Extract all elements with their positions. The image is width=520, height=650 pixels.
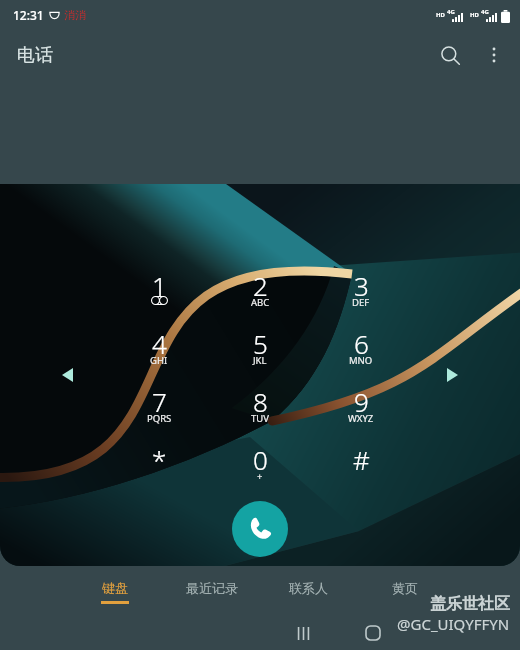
staticText: * (152, 442, 167, 477)
staticText: 联系人 (289, 580, 328, 596)
staticText: 9 (354, 384, 369, 419)
button[interactable]: 9 (321, 377, 401, 427)
staticText: + (257, 470, 263, 483)
staticText: 2 (253, 268, 268, 303)
button[interactable]: 1 (119, 261, 199, 311)
staticText: @GC_UIQYFFYN (397, 614, 510, 634)
staticText: HD (470, 11, 479, 19)
staticText: HD (436, 11, 445, 19)
staticText: 盖乐世社区 (430, 594, 510, 614)
staticText: WXYZ (348, 412, 374, 425)
staticText: 3 (354, 268, 369, 303)
button[interactable]: 4 (119, 319, 199, 369)
button[interactable]: 联系人 (263, 572, 353, 618)
staticText: 最近记录 (186, 580, 238, 596)
button[interactable]: 7 (119, 377, 199, 427)
staticText: 键盘 (102, 580, 128, 596)
staticText: 电话 (17, 44, 53, 67)
button[interactable]: 键盘 (70, 572, 160, 618)
button[interactable]: 最近记录 (167, 572, 257, 618)
staticText: 8 (253, 384, 268, 419)
button[interactable]: Next page (437, 360, 467, 390)
staticText: 6 (354, 326, 369, 361)
staticText: ABC (251, 296, 270, 309)
staticText: PQRS (147, 412, 172, 425)
button[interactable]: 8 (220, 377, 300, 427)
staticText: GHI (150, 354, 168, 367)
staticText: # (353, 442, 370, 477)
button[interactable]: Call (232, 501, 288, 557)
staticText: 12:31 (13, 7, 44, 23)
button[interactable]: 3 (321, 261, 401, 311)
staticText: 4G (481, 8, 489, 16)
button[interactable]: 6 (321, 319, 401, 369)
button[interactable]: 2 (220, 261, 300, 311)
button[interactable]: More options (472, 33, 516, 77)
button[interactable]: 黄页 (360, 572, 450, 618)
staticText: 消消 (64, 8, 86, 22)
staticText: 7 (152, 384, 167, 419)
button[interactable]: # (321, 435, 401, 485)
staticText: TUV (251, 412, 269, 425)
staticText: JKL (253, 354, 267, 367)
button[interactable]: * (119, 435, 199, 485)
staticText: 4G (447, 8, 455, 16)
staticText: 5 (253, 326, 268, 361)
staticText: 黄页 (392, 580, 418, 596)
button[interactable]: 5 (220, 319, 300, 369)
button[interactable]: 0 (220, 435, 300, 485)
staticText: MNO (349, 354, 373, 367)
button[interactable]: Previous page (52, 360, 82, 390)
staticText: 4 (152, 326, 167, 361)
staticText: 0 (253, 442, 268, 477)
button[interactable]: Search (428, 33, 472, 77)
button[interactable]: Recent apps (286, 616, 320, 650)
staticText: DEF (352, 296, 370, 309)
button[interactable]: Home (356, 616, 390, 650)
staticText: 1 (152, 268, 167, 303)
